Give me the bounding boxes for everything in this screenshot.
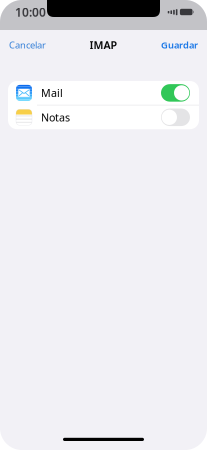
staticText: IMAP [89, 38, 117, 52]
button[interactable]: Notas [8, 105, 199, 129]
button[interactable]: Cancelar [0, 32, 46, 58]
button[interactable]: Mail [8, 81, 199, 105]
staticText: Cancelar [9, 39, 46, 51]
button[interactable]: Guardar [161, 32, 207, 58]
staticText: Mail [41, 86, 63, 100]
staticText: Guardar [161, 39, 198, 51]
staticText: 10:00 [15, 4, 46, 20]
staticText: Notas [41, 110, 70, 124]
